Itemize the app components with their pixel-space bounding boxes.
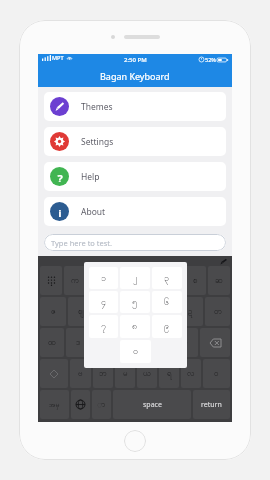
staticText: ဆ [215, 275, 223, 287]
button[interactable]: ဗ [70, 359, 91, 388]
button[interactable] [200, 328, 230, 357]
button[interactable]: ၄ [89, 291, 118, 313]
button[interactable]: ရ [159, 359, 179, 388]
button[interactable]: Settings [44, 127, 226, 156]
staticText: ၇ [101, 320, 107, 333]
button[interactable]: ဂ [112, 266, 134, 295]
button[interactable]: ၅ [120, 291, 150, 313]
button[interactable]: ပ [146, 328, 171, 357]
staticText: ၈ [132, 320, 138, 333]
button[interactable]: ၉ [152, 315, 182, 338]
staticText: Bagan Keyboard [100, 70, 170, 82]
staticText: MPT [52, 54, 64, 61]
staticText: တ [214, 306, 222, 318]
staticText: ၆ [164, 296, 170, 309]
staticText: Settings [81, 136, 114, 148]
button[interactable]: Shift [40, 359, 68, 388]
button[interactable]: ဆ [208, 266, 230, 295]
staticText: အမှ [49, 400, 60, 410]
button[interactable]: ၆ [152, 291, 182, 313]
button[interactable]: မ [115, 359, 135, 388]
staticText: return [201, 400, 222, 410]
button[interactable]: စ [184, 266, 206, 295]
button[interactable]: ၃ [152, 267, 182, 289]
button[interactable]: င [160, 266, 182, 295]
button[interactable]: ၈ [120, 315, 150, 338]
button[interactable]: ဍ [178, 297, 203, 326]
button[interactable]: return [193, 390, 230, 419]
staticText: ၄ [101, 296, 107, 309]
button[interactable]: ထ [40, 328, 64, 357]
staticText: ဗ [78, 368, 83, 380]
staticText: ဈ [78, 306, 84, 318]
staticText: Help [81, 171, 100, 183]
staticText: ၉ [164, 320, 170, 333]
button[interactable]: ဈ [68, 297, 94, 326]
staticText: ာ [97, 399, 106, 411]
staticText: ဒ [76, 337, 81, 349]
staticText: ဇ [51, 306, 56, 318]
button[interactable]: ည [96, 297, 122, 326]
button[interactable]: Switch language [71, 390, 90, 419]
staticText: ပ [156, 337, 161, 349]
button[interactable] [40, 266, 62, 295]
button[interactable]: i [44, 197, 226, 226]
staticText: Type here to test. [51, 238, 113, 248]
button[interactable]: space [113, 390, 191, 419]
staticText: ဘ [99, 368, 107, 380]
button[interactable]: Themes [44, 92, 226, 121]
staticText: ၃ [164, 272, 170, 285]
button[interactable]: ဓ [92, 328, 117, 357]
button[interactable]: ၁ [89, 267, 118, 289]
button[interactable]: ? [44, 162, 226, 191]
button[interactable]: န [119, 328, 144, 357]
button[interactable]: ဖ [173, 328, 198, 357]
staticText: ၁ [101, 272, 107, 285]
staticText: ဍ [188, 306, 193, 318]
staticText: ဓ [102, 337, 107, 349]
staticText: ဌ [161, 306, 166, 318]
staticText: ရ [167, 368, 172, 380]
button[interactable]: ဋ [124, 297, 149, 326]
staticText: ည [105, 306, 113, 318]
staticText: ဖ [183, 337, 188, 349]
button[interactable]: က [64, 266, 86, 295]
staticText: 52% [205, 56, 216, 63]
button[interactable]: Home [124, 430, 146, 452]
staticText: ထ [48, 337, 56, 349]
staticText: စ [193, 275, 198, 287]
button[interactable]: ဃ [136, 266, 158, 295]
button[interactable]: ၂ [120, 267, 150, 289]
button[interactable]: ဘ [93, 359, 113, 388]
staticText: ဝ [214, 368, 219, 380]
button[interactable]: လ [181, 359, 201, 388]
staticText: န [129, 337, 134, 349]
button[interactable]: ဒ [66, 328, 90, 357]
staticText: က [71, 275, 79, 287]
staticText: ဃ [143, 275, 151, 287]
other: Theme [220, 258, 227, 265]
staticText: ၅ [132, 296, 138, 309]
button[interactable]: ခ [88, 266, 110, 295]
staticText: Themes [81, 101, 113, 113]
button[interactable]: ယ [137, 359, 157, 388]
staticText: i [58, 206, 62, 217]
button[interactable]: ၇ [89, 315, 118, 338]
staticText: 2:50 PM [124, 56, 147, 64]
button[interactable]: ဌ [151, 297, 176, 326]
staticText: ၀ [133, 345, 139, 358]
staticText: ယ [143, 368, 151, 380]
staticText: About [81, 206, 106, 218]
button[interactable]: ၀ [120, 340, 151, 363]
staticText: space [143, 400, 162, 410]
staticText: လ [187, 368, 195, 380]
staticText: ? [57, 171, 63, 182]
staticText: ၂ [133, 272, 138, 285]
button[interactable]: Type here to test. [44, 234, 226, 251]
